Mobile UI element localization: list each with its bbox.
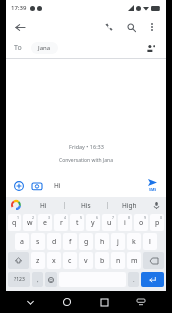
button[interactable]: Add contact <box>144 41 158 55</box>
staticText: To <box>14 43 22 53</box>
button[interactable]: j <box>111 233 125 250</box>
staticText: p <box>155 218 160 228</box>
staticText: t <box>76 218 79 228</box>
button[interactable]: More options <box>144 19 160 35</box>
staticText: 3 <box>48 215 51 220</box>
button[interactable]: Hi <box>22 197 64 213</box>
button[interactable]: z <box>31 252 45 269</box>
button[interactable]: Emoji <box>45 272 57 287</box>
button[interactable]: Enter <box>141 272 164 287</box>
button[interactable]: a <box>15 233 29 250</box>
button[interactable]: Camera <box>29 178 44 193</box>
button[interactable]: Back <box>12 19 28 35</box>
button[interactable]: Call <box>101 19 117 35</box>
staticText: o <box>139 218 144 228</box>
staticText: k <box>132 237 136 247</box>
button[interactable]: d <box>47 233 61 250</box>
staticText: Conversation with Jana <box>59 157 113 164</box>
staticText: 1 <box>17 215 20 220</box>
staticText: n <box>116 256 121 266</box>
button[interactable]: Jana <box>31 42 58 54</box>
staticText: 4 <box>64 215 67 220</box>
staticText: 0 <box>160 215 163 220</box>
button[interactable]: h <box>95 233 109 250</box>
button[interactable]: Send SMS <box>143 176 161 194</box>
staticText: z <box>36 256 40 266</box>
button[interactable]: . <box>128 272 139 287</box>
button[interactable]: Hide keyboard <box>22 294 38 310</box>
button[interactable]: Recent apps <box>96 294 112 310</box>
button[interactable]: Hi <box>48 178 139 193</box>
button[interactable]: l <box>143 233 157 250</box>
staticText: . <box>133 276 135 284</box>
button[interactable]: r <box>54 214 68 231</box>
button[interactable]: i <box>118 214 132 231</box>
button[interactable]: Add attachment <box>11 178 26 193</box>
button[interactable]: High <box>108 197 150 213</box>
button[interactable]: Backspace <box>143 252 164 269</box>
button[interactable]: u <box>102 214 116 231</box>
button[interactable]: t <box>70 214 84 231</box>
staticText: i <box>124 218 126 228</box>
button[interactable]: c <box>63 252 77 269</box>
staticText: f <box>69 237 72 247</box>
button[interactable]: Google <box>10 199 22 211</box>
staticText: Friday • 16:33 <box>69 143 104 150</box>
staticText: 6 <box>96 215 99 220</box>
button[interactable]: Search <box>123 19 139 35</box>
staticText: 8 <box>128 215 131 220</box>
button[interactable]: f <box>63 233 77 250</box>
staticText: s <box>36 237 40 247</box>
staticText: r <box>60 218 63 228</box>
button[interactable]: y <box>86 214 100 231</box>
staticText: m <box>131 256 138 266</box>
staticText: High <box>122 201 137 210</box>
staticText: ?123 <box>14 276 25 283</box>
button[interactable]: v <box>79 252 93 269</box>
button[interactable]: n <box>111 252 125 269</box>
button[interactable]: Switch keyboard <box>133 294 149 310</box>
button[interactable]: Home <box>59 294 75 310</box>
staticText: Hi <box>40 201 47 210</box>
button[interactable]: o <box>134 214 148 231</box>
staticText: Hi <box>54 181 61 190</box>
button[interactable]: m <box>127 252 141 269</box>
staticText: 2 <box>32 215 35 220</box>
staticText: y <box>91 218 95 228</box>
staticText: q <box>12 218 17 228</box>
button[interactable]: w <box>23 214 36 231</box>
staticText: w <box>27 218 33 228</box>
staticText: l <box>149 237 151 247</box>
staticText: 17:39 <box>11 4 27 12</box>
staticText: g <box>84 237 89 247</box>
staticText: v <box>84 256 88 266</box>
button[interactable]: s <box>31 233 45 250</box>
staticText: b <box>100 256 105 266</box>
staticText: h <box>100 237 105 247</box>
staticText: x <box>52 256 56 266</box>
button[interactable]: Voice input <box>150 199 162 211</box>
staticText: a <box>20 237 24 247</box>
staticText: d <box>52 237 57 247</box>
staticText: 5 <box>80 215 83 220</box>
staticText: j <box>117 237 119 247</box>
staticText: , <box>37 276 39 284</box>
button[interactable]: Shift <box>8 252 29 269</box>
button[interactable]: b <box>95 252 109 269</box>
button[interactable]: q <box>8 214 21 231</box>
button[interactable]: p <box>150 214 164 231</box>
button[interactable]: e <box>38 214 52 231</box>
button[interactable]: His <box>65 197 107 213</box>
button[interactable]: x <box>47 252 61 269</box>
button[interactable]: , <box>32 272 43 287</box>
staticText: 7 <box>112 215 115 220</box>
staticText: SMS <box>149 187 157 192</box>
button[interactable]: ?123 <box>8 272 30 287</box>
button[interactable]: g <box>79 233 93 250</box>
staticText: c <box>68 256 72 266</box>
staticText: 9 <box>144 215 147 220</box>
staticText: Jana <box>38 44 51 52</box>
staticText: e <box>43 218 47 228</box>
button[interactable]: k <box>127 233 141 250</box>
